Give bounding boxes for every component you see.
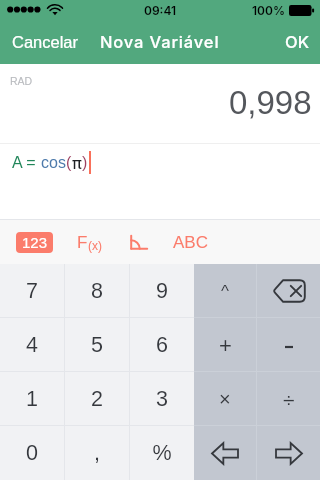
button[interactable]: 4 xyxy=(0,318,64,372)
staticText: 7 xyxy=(26,279,38,303)
button[interactable]: Power xyxy=(194,264,256,318)
button[interactable]: Angle and geometry keys xyxy=(124,227,154,257)
staticText: 8 xyxy=(91,279,103,303)
staticText: Nova Variável xyxy=(100,32,220,52)
button[interactable]: Divide xyxy=(257,372,320,426)
button[interactable]: F xyxy=(74,227,105,258)
staticText: A = xyxy=(12,154,41,172)
staticText: RAD xyxy=(10,75,33,87)
button[interactable]: 123 xyxy=(16,232,53,253)
staticText: F xyxy=(77,233,88,252)
staticText: 0,998 xyxy=(229,84,312,121)
button[interactable]: Move cursor right xyxy=(257,426,320,480)
button[interactable]: Plus xyxy=(194,318,256,372)
button[interactable]: Cancelar xyxy=(0,20,89,64)
button[interactable]: 2 xyxy=(65,372,129,426)
button[interactable]: Multiply xyxy=(194,372,256,426)
button[interactable]: % xyxy=(130,426,194,480)
button[interactable]: Minus xyxy=(257,318,320,372)
button[interactable]: 6 xyxy=(130,318,194,372)
staticText: ) xyxy=(82,154,88,172)
staticText: , xyxy=(94,441,100,465)
staticText: % xyxy=(152,441,172,465)
staticText: π xyxy=(72,153,82,172)
button[interactable]: Move cursor left xyxy=(194,426,256,480)
button[interactable]: Backspace xyxy=(257,264,320,318)
staticText: ÷ xyxy=(283,388,295,411)
staticText: ( xyxy=(66,154,72,172)
button[interactable]: 7 xyxy=(0,264,64,318)
staticText: × xyxy=(219,388,231,410)
staticText: Cancelar xyxy=(12,33,79,51)
staticText: 1 xyxy=(26,387,38,411)
staticText: 0 xyxy=(26,441,38,465)
button[interactable]: 9 xyxy=(130,264,194,318)
staticText: 123 xyxy=(22,234,48,251)
button[interactable]: OK xyxy=(275,20,320,64)
staticText: cos xyxy=(41,154,66,172)
staticText: 9 xyxy=(156,279,168,303)
button[interactable]: 5 xyxy=(65,318,129,372)
staticText: (x) xyxy=(88,239,102,252)
button[interactable]: 3 xyxy=(130,372,194,426)
staticText: ^ xyxy=(221,282,229,301)
staticText: 6 xyxy=(156,333,168,357)
button[interactable]: ABC xyxy=(170,227,211,258)
staticText: 2 xyxy=(91,387,103,411)
staticText: 09:41 xyxy=(144,3,177,18)
staticText: ABC xyxy=(173,233,208,252)
button[interactable]: , xyxy=(65,426,129,480)
staticText: OK xyxy=(285,32,309,52)
staticText: 4 xyxy=(26,333,38,357)
button[interactable]: 0 xyxy=(0,426,64,480)
staticText: 3 xyxy=(156,387,168,411)
staticText: 5 xyxy=(91,333,103,357)
button[interactable]: 8 xyxy=(65,264,129,318)
button[interactable]: 1 xyxy=(0,372,64,426)
staticText: 100% xyxy=(252,3,285,18)
staticText: + xyxy=(219,333,232,358)
